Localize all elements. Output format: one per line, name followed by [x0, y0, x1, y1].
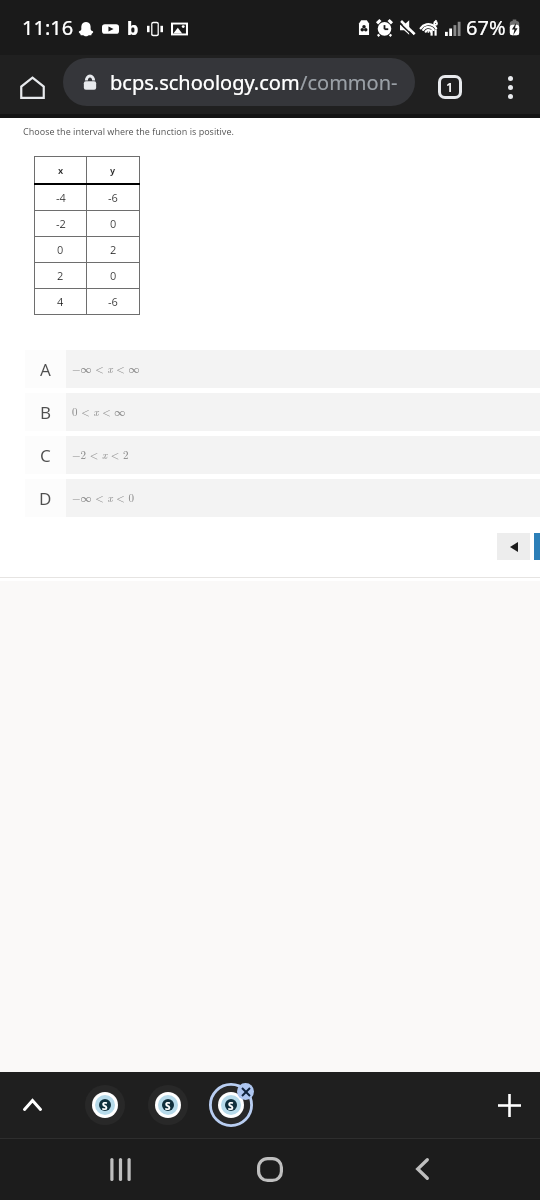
staticText: 11:16 — [22, 14, 74, 41]
staticText: /common- — [300, 69, 398, 96]
staticText: S — [228, 1099, 234, 1111]
staticText: 0 — [110, 268, 117, 283]
staticText: bcps.schoology.com — [110, 69, 300, 96]
button[interactable]: Schoology tab — [81, 1081, 129, 1129]
button[interactable]: A — [25, 350, 540, 388]
button[interactable]: Home — [9, 64, 55, 110]
staticText: 0 < x < ∞ — [72, 404, 126, 420]
staticText: S — [102, 1099, 108, 1111]
staticText: S — [165, 1099, 171, 1111]
staticText: -6 — [108, 190, 118, 205]
staticText: −∞ < x < ∞ — [72, 361, 140, 377]
button[interactable]: Schoology tab — [207, 1081, 255, 1129]
staticText: Choose the interval where the function i… — [23, 125, 234, 137]
button[interactable]: New tab — [487, 1083, 531, 1127]
button[interactable]: C — [25, 436, 540, 474]
button[interactable]: Switch tabs — [428, 65, 472, 109]
staticText: B — [40, 401, 52, 424]
staticText: -4 — [56, 190, 66, 205]
staticText: -6 — [108, 294, 118, 309]
staticText: 1 — [446, 78, 454, 96]
staticText: C — [40, 444, 51, 467]
staticText: y — [110, 164, 116, 176]
staticText: 67% — [466, 14, 506, 41]
staticText: D — [39, 487, 52, 510]
button[interactable]: Recent apps — [92, 1141, 148, 1197]
staticText: −∞ < x < 0 — [72, 490, 134, 506]
button[interactable]: Expand tab switcher — [10, 1083, 54, 1127]
button[interactable]: Previous question — [497, 533, 530, 560]
staticText: 4 — [57, 294, 64, 309]
staticText: -2 — [56, 216, 66, 231]
staticText: b — [127, 16, 139, 41]
button[interactable]: Back — [394, 1141, 450, 1197]
staticText: A — [40, 358, 51, 381]
button[interactable]: More options — [488, 65, 532, 109]
button[interactable]: Schoology tab — [144, 1081, 192, 1129]
button[interactable]: D — [25, 479, 540, 517]
staticText: 0 — [110, 216, 117, 231]
staticText: 2 — [57, 268, 64, 283]
button[interactable]: Home — [242, 1141, 298, 1197]
staticText: −2 < x < 2 — [72, 447, 129, 463]
button[interactable]: bcps.schoology.com — [63, 58, 415, 106]
button[interactable]: B — [25, 393, 540, 431]
button[interactable]: Close tab — [237, 1083, 254, 1100]
staticText: 2 — [110, 242, 117, 257]
staticText: 0 — [57, 242, 64, 257]
staticText: x — [58, 164, 64, 176]
